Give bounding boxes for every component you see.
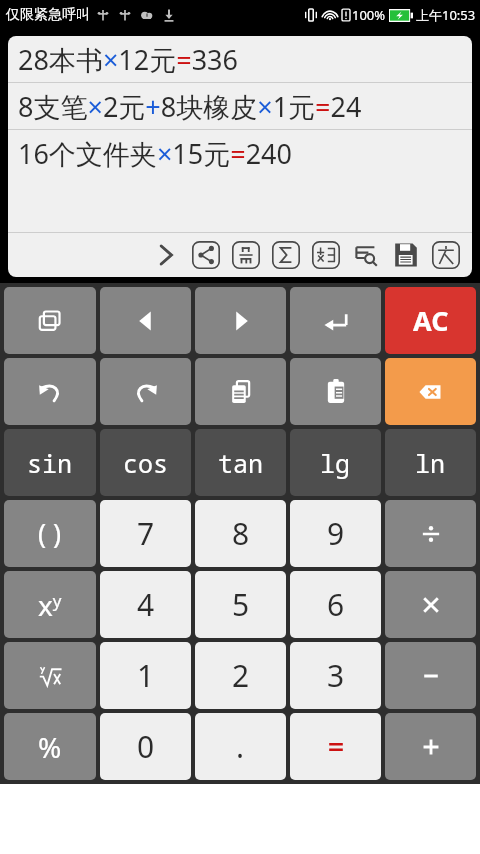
button[interactable]: 9 [290,500,381,567]
button[interactable]: lg [290,429,381,496]
button[interactable]: tan [195,429,286,496]
button[interactable]: 8 [195,500,286,567]
button[interactable]: Minus [385,642,476,709]
staticText: ln [415,446,446,480]
button[interactable]: Move right [195,287,286,354]
button[interactable]: Paste [290,358,381,425]
staticText: 16个文件夹×15元=240 [18,135,292,172]
button[interactable]: Fraction [226,235,266,275]
button[interactable]: Screens [4,287,96,354]
button[interactable]: Copy [195,358,286,425]
staticText: AC [413,302,449,339]
button[interactable]: Backspace [385,358,476,425]
button[interactable]: Uppercase [306,235,346,275]
button[interactable]: Redo [100,358,191,425]
staticText: ( ) [38,515,62,552]
staticText: lg [320,446,351,480]
button[interactable]: ln [385,429,476,496]
staticText: cos [123,446,169,480]
staticText: 8 [232,513,250,554]
staticText: 5 [232,584,250,625]
button[interactable]: Enter [290,287,381,354]
button[interactable]: Search history [346,235,386,275]
button[interactable]: cos [100,429,191,496]
button[interactable]: Nth root [4,642,96,709]
staticText: sin [27,446,73,480]
button[interactable]: AC [385,287,476,354]
button[interactable]: 6 [290,571,381,638]
staticText: 8支笔×2元+8块橡皮×1元=24 [18,88,362,125]
staticText: 上午10:53 [416,6,476,24]
button[interactable]: Undo [4,358,96,425]
button[interactable]: Multiply [385,571,476,638]
staticText: 1 [137,655,155,696]
button[interactable]: Text mode [426,235,466,275]
button[interactable]: 7 [100,500,191,567]
button[interactable]: xy [4,571,96,638]
button[interactable]: Share [186,235,226,275]
button[interactable]: Sum [266,235,306,275]
button[interactable]: 0 [100,713,191,780]
staticText: 6 [327,584,345,625]
button[interactable]: Move left [100,287,191,354]
button[interactable]: ( ) [4,500,96,567]
button[interactable]: sin [4,429,96,496]
button[interactable]: Equals [290,713,381,780]
button[interactable]: Expand [146,235,186,275]
button[interactable]: 3 [290,642,381,709]
staticText: 2 [232,655,250,696]
staticText: 仅限紧急呼叫 [6,6,90,24]
staticText: % [38,728,62,766]
staticText: tan [218,446,264,480]
button[interactable]: 1 [100,642,191,709]
staticText: 0 [137,726,155,767]
staticText: 7 [137,513,155,554]
staticText: 4 [137,584,155,625]
button[interactable]: Plus [385,713,476,780]
staticText: 3 [327,655,345,696]
button[interactable]: 5 [195,571,286,638]
button[interactable]: % [4,713,96,780]
button[interactable]: Save [386,235,426,275]
staticText: 9 [327,513,345,554]
staticText: 100% [352,6,386,24]
button[interactable]: 4 [100,571,191,638]
button[interactable]: . [195,713,286,780]
staticText: . [236,726,245,767]
button[interactable]: Divide [385,500,476,567]
staticText: xy [38,586,62,624]
button[interactable]: 2 [195,642,286,709]
staticText: 28本书×12元=336 [18,41,238,78]
